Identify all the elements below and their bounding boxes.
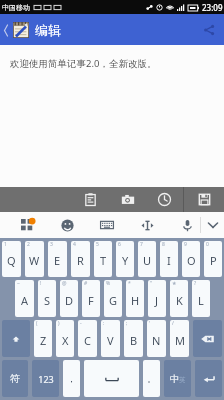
staticText: 123 <box>38 373 54 385</box>
staticText: % <box>106 280 111 287</box>
staticText: A <box>21 293 29 308</box>
staticText: 欢迎使用简单记事2.0，全新改版。 <box>10 57 157 70</box>
button[interactable]: ‘ <box>147 320 166 357</box>
staticText: 23:09 <box>202 2 223 13</box>
button[interactable]: 7 <box>138 241 156 277</box>
button[interactable]: 1 <box>2 241 21 277</box>
staticText: 9 <box>184 241 187 248</box>
staticText: W <box>29 253 40 268</box>
staticText: T <box>100 253 107 268</box>
button[interactable]: ~ <box>15 280 34 317</box>
button[interactable]: ( <box>34 320 52 357</box>
button[interactable]: ; <box>124 320 143 357</box>
staticText: U <box>143 253 152 268</box>
staticText: 0 <box>206 241 209 248</box>
staticText: 7 <box>140 241 143 248</box>
staticText: K <box>176 293 183 308</box>
button[interactable]: Emoji <box>54 212 80 238</box>
staticText: P <box>210 253 217 268</box>
button[interactable]: 中 <box>164 360 191 397</box>
staticText: ~ <box>17 280 20 287</box>
button[interactable]: Share <box>199 20 219 40</box>
button[interactable]: 0 <box>204 241 222 277</box>
button[interactable]: Voice input <box>174 212 200 238</box>
staticText: ( <box>36 320 38 327</box>
staticText: 3 <box>50 241 53 248</box>
button[interactable] <box>2 320 30 357</box>
staticText: G <box>109 293 118 308</box>
staticText: Q <box>7 253 16 268</box>
button[interactable]: Camera <box>109 187 146 212</box>
button[interactable]: Hide keyboard <box>201 212 224 238</box>
button[interactable]: 4 <box>71 241 90 277</box>
staticText: 英 <box>179 376 186 384</box>
staticText: # <box>84 280 88 287</box>
staticText: 中 <box>170 373 179 384</box>
button[interactable]: 5 <box>94 241 112 277</box>
staticText: " <box>150 280 153 287</box>
staticText: R <box>77 253 84 268</box>
staticText: H <box>131 293 140 308</box>
staticText: : <box>103 320 105 327</box>
button[interactable]: ) <box>56 320 74 357</box>
button[interactable]: / <box>170 320 189 357</box>
button[interactable]: 8 <box>160 241 178 277</box>
staticText: Y <box>122 253 129 268</box>
staticText: L <box>198 293 204 308</box>
staticText: 4 <box>73 241 76 248</box>
button[interactable]: ， <box>63 360 80 397</box>
staticText: D <box>65 293 74 308</box>
staticText: O <box>187 253 196 268</box>
button[interactable] <box>84 360 139 397</box>
staticText: / <box>172 320 174 327</box>
button[interactable]: # <box>82 280 100 317</box>
button[interactable]: @ <box>60 280 78 317</box>
button[interactable]: Time <box>146 187 183 212</box>
button[interactable] <box>195 360 222 397</box>
staticText: N <box>152 333 161 348</box>
staticText: S <box>44 293 51 308</box>
button[interactable]: % <box>104 280 122 317</box>
staticText: Z <box>40 333 47 348</box>
staticText: V <box>107 333 114 348</box>
button[interactable] <box>193 320 222 357</box>
button[interactable]: ! <box>38 280 56 317</box>
button[interactable]: Save <box>184 187 224 212</box>
staticText: 中国移动 <box>2 3 30 12</box>
button[interactable]: - <box>78 320 97 357</box>
button[interactable]: Keyboard <box>94 212 120 238</box>
staticText: E <box>54 253 61 268</box>
staticText: 编辑 <box>35 22 61 38</box>
staticText: 符 <box>10 372 20 385</box>
staticText: I <box>167 253 171 268</box>
staticText: 。 <box>147 373 156 384</box>
button[interactable]: 编辑 <box>3 21 65 39</box>
button[interactable]: Clipboard <box>72 187 109 212</box>
button[interactable]: 6 <box>116 241 134 277</box>
staticText: 2 <box>27 241 30 248</box>
button[interactable]: 3 <box>48 241 67 277</box>
button[interactable]: Move cursor <box>134 212 160 238</box>
staticText: 1 <box>4 241 7 248</box>
button[interactable]: ? <box>192 280 210 317</box>
staticText: 8 <box>162 241 165 248</box>
staticText: ★ <box>172 280 177 286</box>
button[interactable]: Apps <box>14 212 40 238</box>
staticText: X <box>62 333 69 348</box>
staticText: B <box>130 333 138 348</box>
staticText: C <box>84 333 91 348</box>
staticText: ? <box>194 280 197 287</box>
button[interactable]: 9 <box>182 241 200 277</box>
button[interactable]: 。 <box>143 360 160 397</box>
button[interactable]: 符 <box>2 360 28 397</box>
button[interactable]: : <box>101 320 120 357</box>
staticText: ， <box>67 373 76 384</box>
staticText: @ <box>62 280 67 287</box>
staticText: ‘ <box>149 320 150 327</box>
button[interactable]: 2 <box>25 241 44 277</box>
button[interactable]: * <box>126 280 144 317</box>
staticText: - <box>80 320 82 327</box>
button[interactable]: ★ <box>170 280 188 317</box>
button[interactable]: 123 <box>32 360 59 397</box>
button[interactable]: " <box>148 280 166 317</box>
